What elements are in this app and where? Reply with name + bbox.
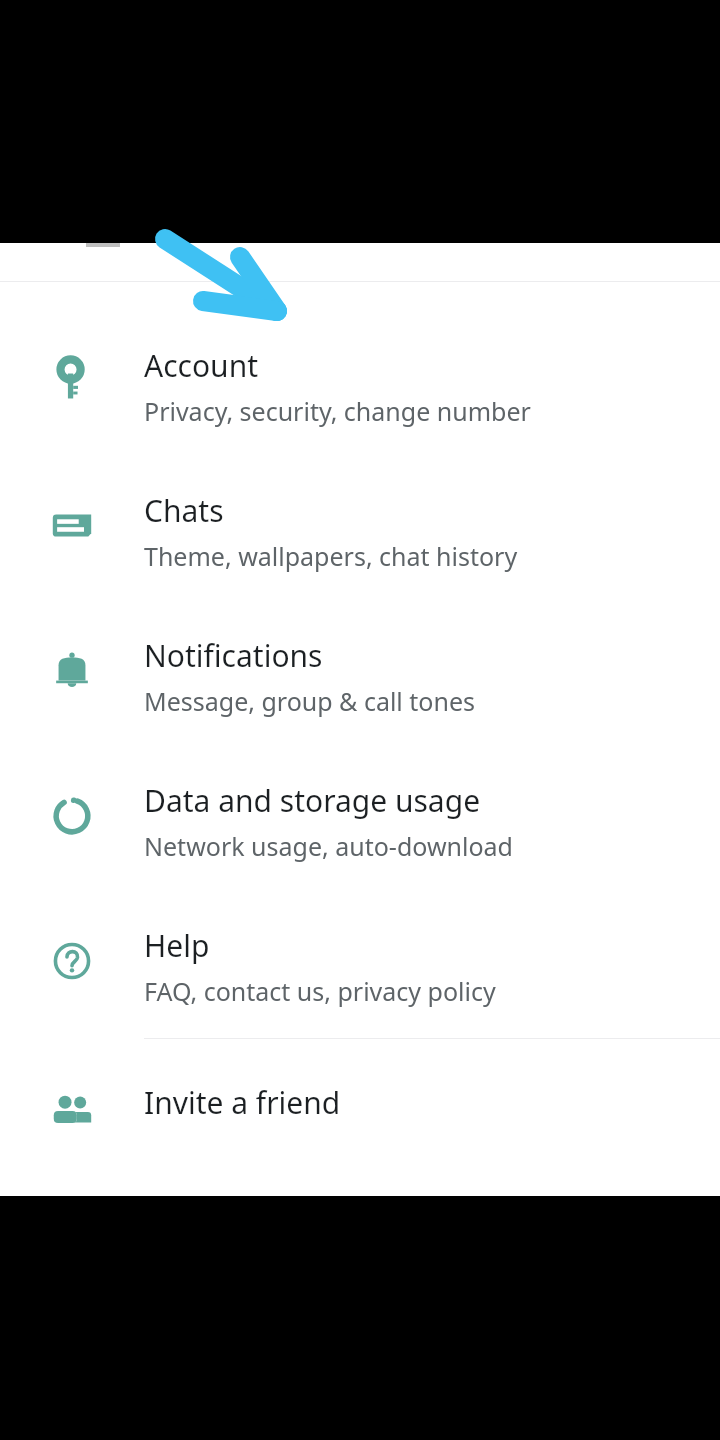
button[interactable]: Help bbox=[0, 909, 720, 1054]
staticText: Help bbox=[144, 925, 210, 966]
staticText: Privacy, security, change number bbox=[144, 394, 531, 428]
other: Help bbox=[48, 937, 96, 985]
staticText: Network usage, auto-download bbox=[144, 829, 513, 863]
button[interactable]: Invite a friend bbox=[0, 1066, 720, 1186]
button[interactable]: Notifications bbox=[0, 619, 720, 764]
other: Notifications bbox=[48, 647, 96, 695]
staticText: Data and storage usage bbox=[144, 780, 481, 821]
button[interactable]: Data and storage usage bbox=[0, 764, 720, 909]
other: Invite a friend bbox=[48, 1088, 96, 1136]
staticText: Message, group & call tones bbox=[144, 684, 475, 718]
staticText: Chats bbox=[144, 490, 224, 531]
button[interactable]: Chats bbox=[0, 474, 720, 619]
other: Data and storage usage bbox=[48, 792, 96, 840]
staticText: Account bbox=[144, 345, 259, 386]
button[interactable]: Account bbox=[0, 329, 720, 474]
staticText: Notifications bbox=[144, 635, 323, 676]
other: Chats bbox=[48, 502, 96, 550]
staticText: FAQ, contact us, privacy policy bbox=[144, 974, 496, 1008]
staticText: Theme, wallpapers, chat history bbox=[144, 539, 518, 573]
staticText: Invite a friend bbox=[144, 1082, 341, 1123]
other: Account bbox=[48, 357, 96, 405]
